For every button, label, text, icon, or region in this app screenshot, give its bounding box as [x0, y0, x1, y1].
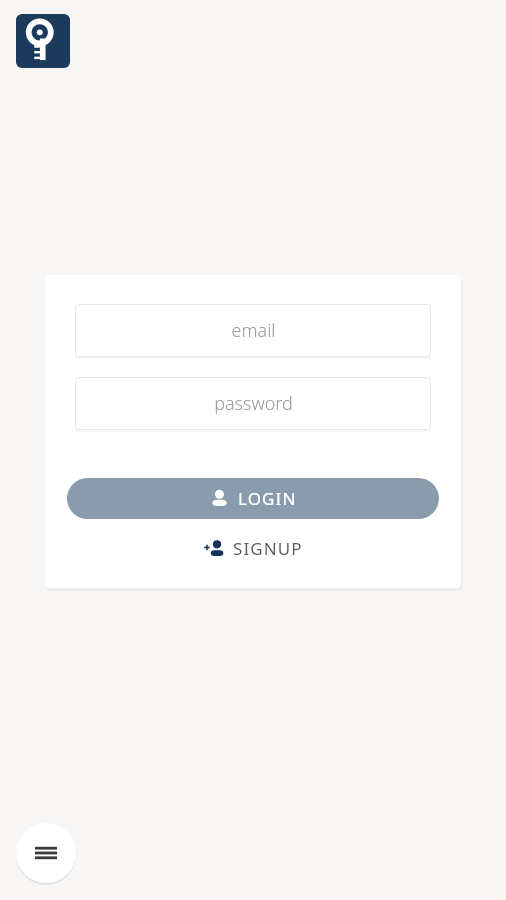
button[interactable]: email — [75, 304, 431, 357]
button[interactable]: Menu — [16, 823, 76, 883]
button[interactable]: password — [75, 377, 431, 430]
button[interactable]: App logo — [16, 14, 70, 68]
button[interactable]: LOGIN — [67, 478, 439, 519]
staticText: email — [231, 318, 276, 343]
button[interactable]: SIGNUP — [67, 529, 439, 567]
staticText: SIGNUP — [233, 537, 303, 560]
staticText: LOGIN — [238, 487, 297, 510]
staticText: password — [214, 391, 293, 416]
